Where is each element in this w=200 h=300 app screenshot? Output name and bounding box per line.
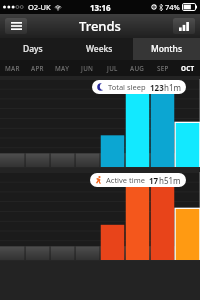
staticText: h1m: [164, 82, 181, 93]
staticText: Trends: [79, 17, 121, 35]
staticText: 13:16: [90, 2, 111, 13]
staticText: OCT: [181, 64, 195, 73]
staticText: Days: [23, 43, 43, 55]
staticText: MAY: [55, 64, 70, 73]
staticText: Weeks: [86, 43, 113, 55]
staticText: Total sleep: [108, 82, 146, 92]
staticText: Active time: [106, 175, 145, 185]
staticText: MAR: [5, 64, 20, 73]
button[interactable]: Weeks: [66, 38, 133, 60]
staticText: O2-UK: [28, 2, 51, 12]
staticText: APR: [31, 64, 44, 73]
staticText: JUN: [81, 64, 94, 73]
staticText: Months: [151, 43, 183, 55]
staticText: 123: [150, 82, 164, 93]
staticText: h51m: [159, 175, 181, 186]
staticText: 17: [149, 175, 159, 186]
button[interactable]: Statistics: [173, 18, 195, 34]
button[interactable]: Active time: [95, 173, 181, 187]
staticText: SEP: [157, 64, 169, 73]
button[interactable]: Days: [0, 38, 66, 60]
staticText: 74%: [165, 2, 180, 12]
button[interactable]: Menu: [5, 18, 27, 34]
button[interactable]: Total sleep: [97, 80, 181, 94]
staticText: JUL: [107, 64, 118, 73]
button[interactable]: Months: [133, 38, 200, 60]
staticText: AUG: [130, 64, 145, 73]
